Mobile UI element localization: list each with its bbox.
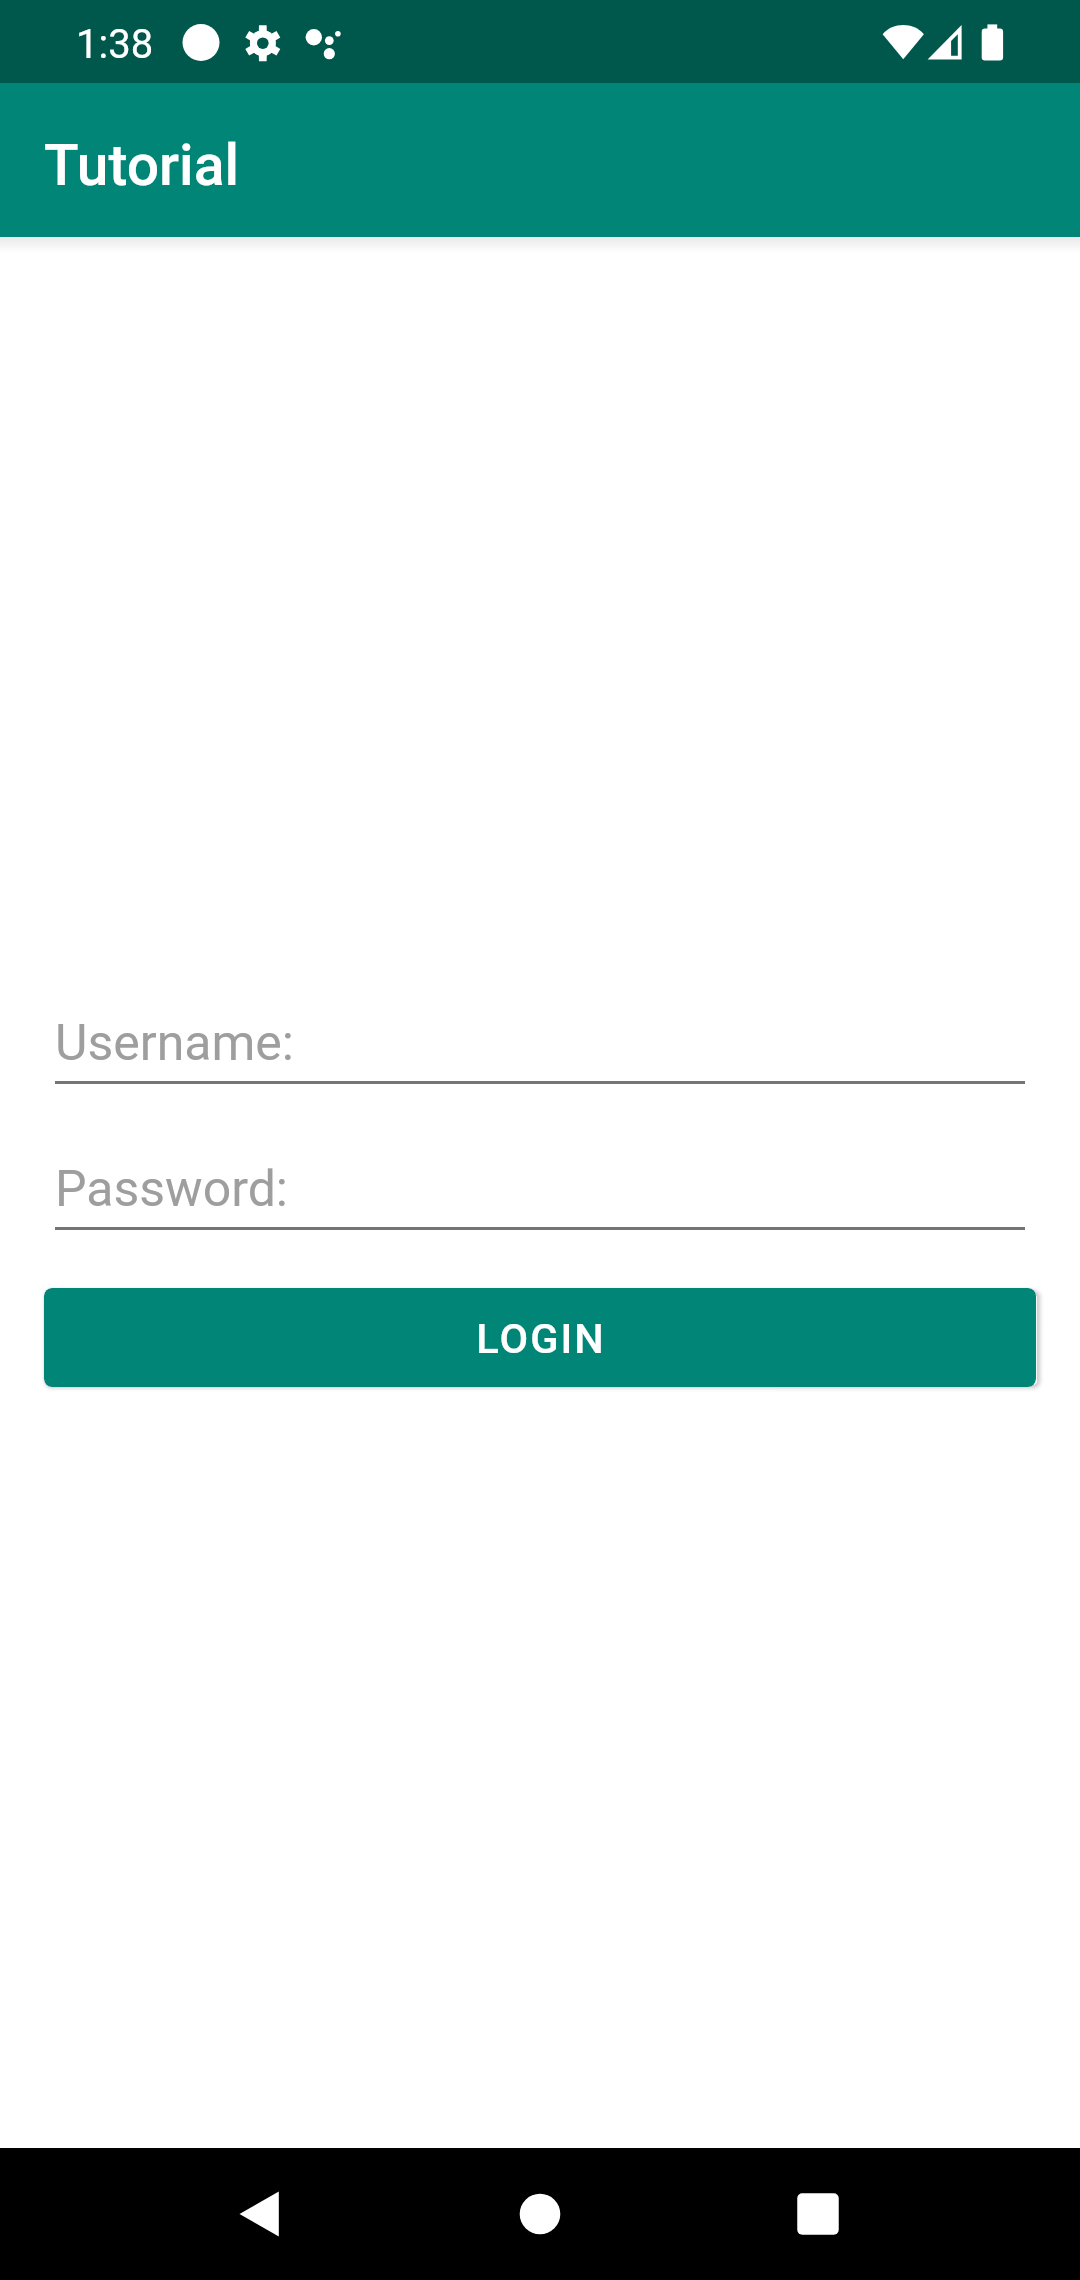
staticText: LOGIN bbox=[476, 1314, 606, 1363]
button[interactable]: Back bbox=[189, 2148, 329, 2280]
staticText: Tutorial bbox=[44, 132, 240, 199]
button[interactable]: Username: bbox=[44, 993, 1036, 1084]
button[interactable]: LOGIN bbox=[44, 1288, 1036, 1387]
staticText: 1:38 bbox=[76, 21, 154, 68]
staticText: Username: bbox=[55, 1014, 294, 1073]
button[interactable]: Home bbox=[470, 2148, 610, 2280]
button[interactable]: Password: bbox=[44, 1139, 1036, 1230]
staticText: Password: bbox=[55, 1160, 288, 1219]
button[interactable]: Recents bbox=[748, 2148, 888, 2280]
